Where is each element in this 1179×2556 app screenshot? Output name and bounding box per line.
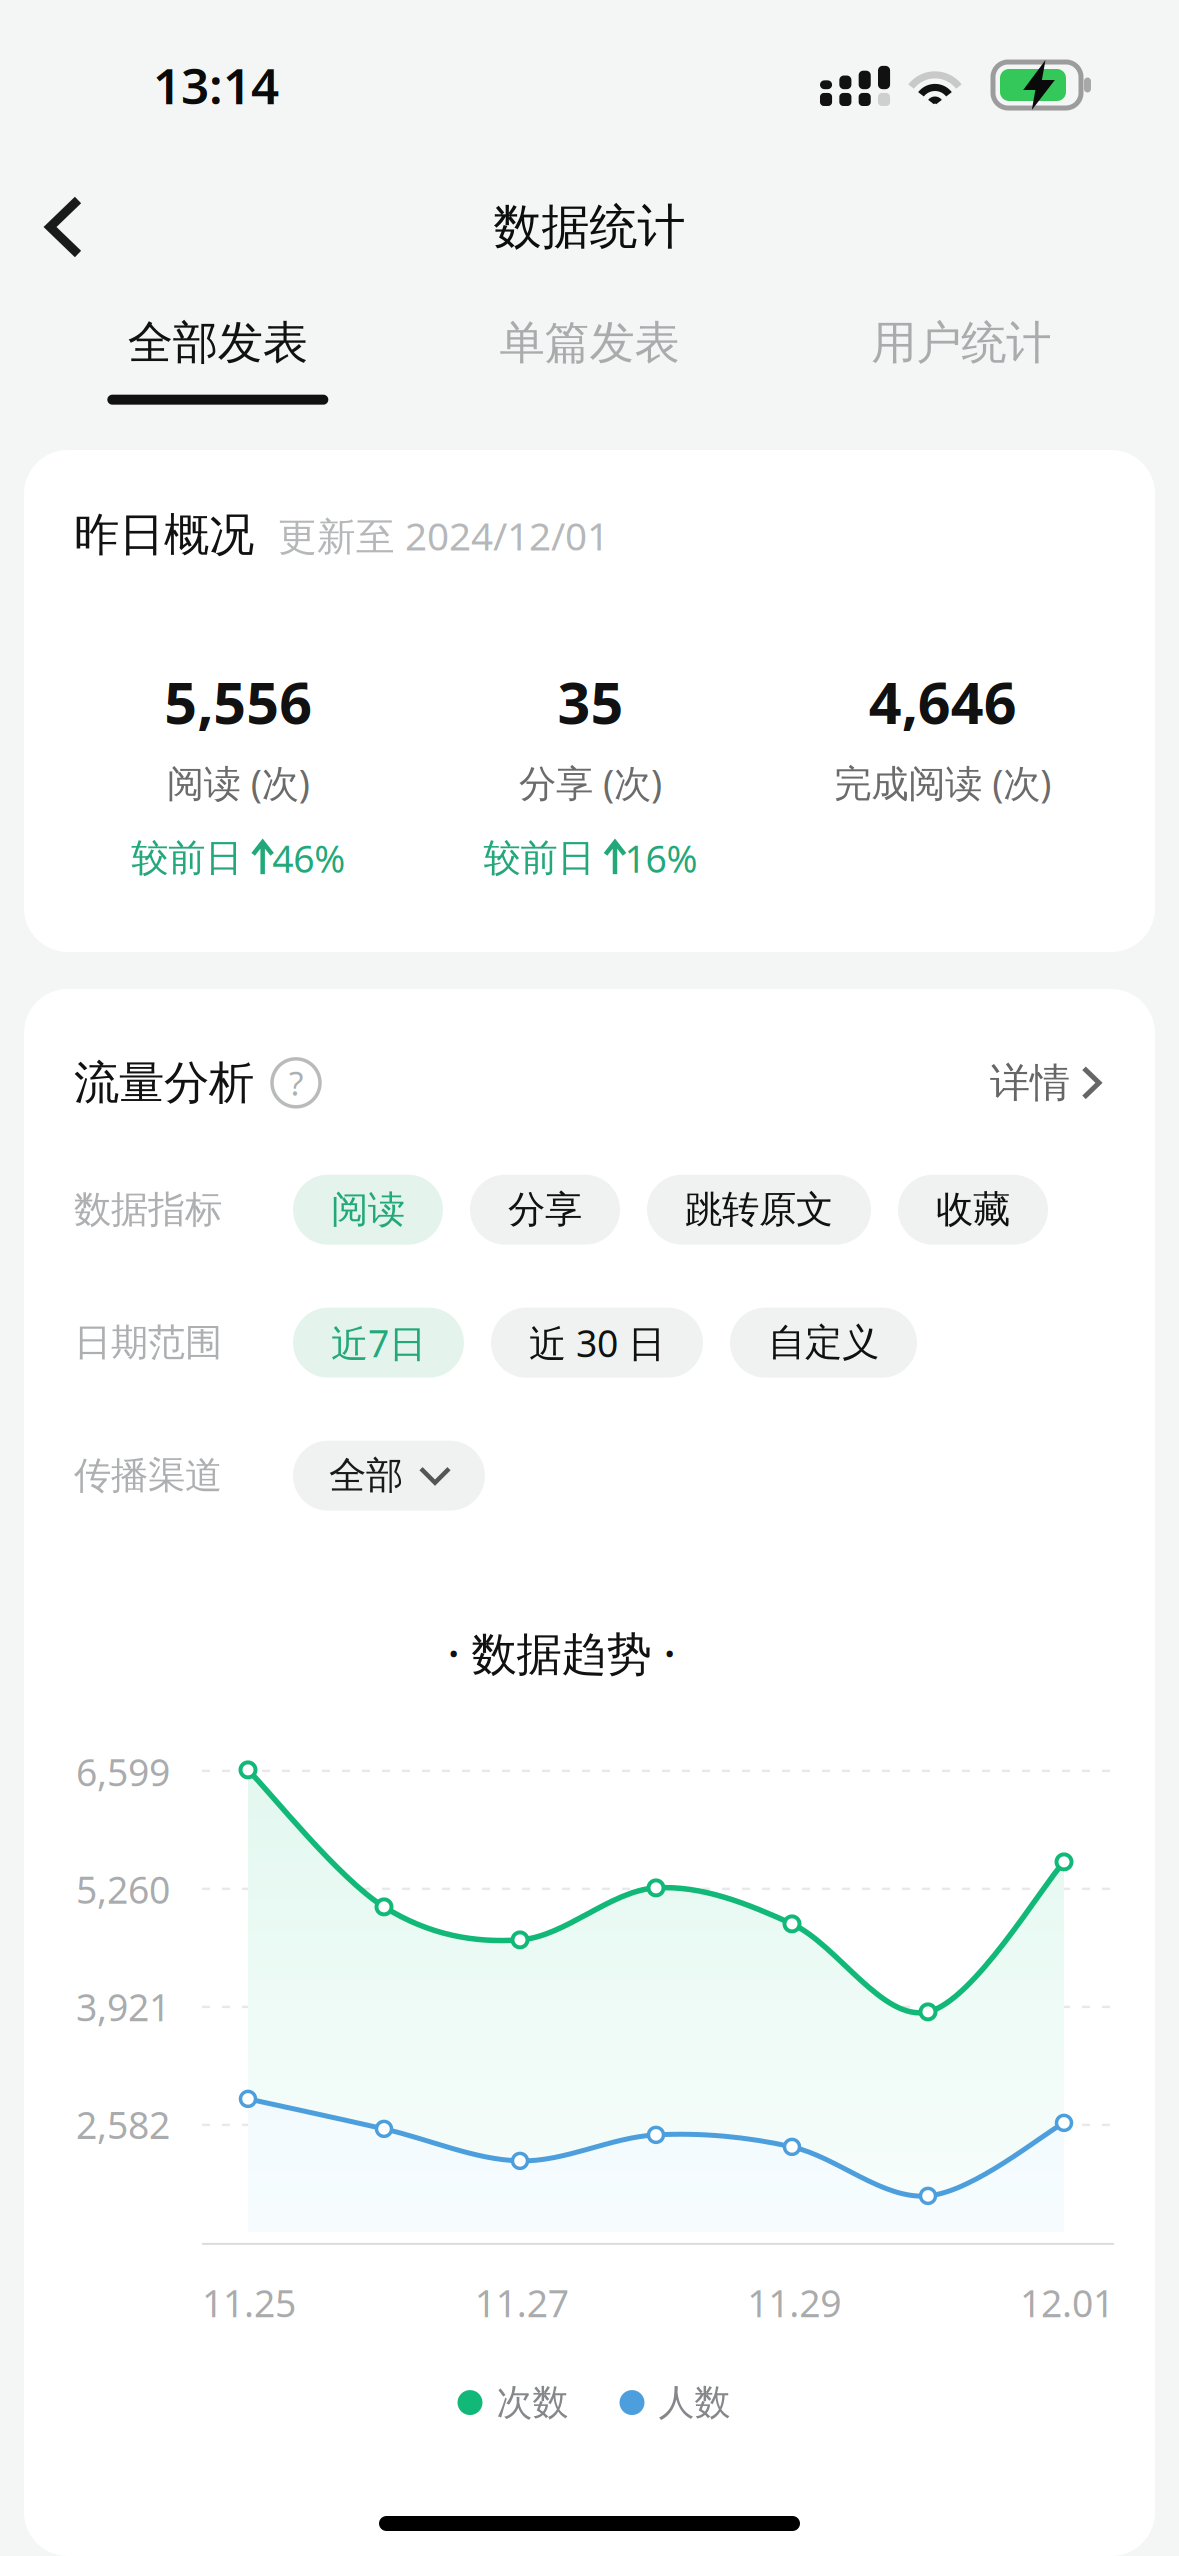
staticText: 传播渠道: [74, 1453, 222, 1499]
staticText: 详情: [990, 1058, 1070, 1107]
staticText: 分享 (次): [519, 758, 662, 807]
button[interactable]: Help: [272, 1059, 320, 1107]
button[interactable]: 自定义: [730, 1308, 917, 1378]
staticText: 完成阅读 (次): [834, 758, 1051, 807]
staticText: 5,260: [76, 1864, 170, 1914]
staticText: 较前日: [483, 835, 605, 881]
staticText: 2,582: [76, 2100, 170, 2149]
staticText: 跳转原文: [685, 1187, 833, 1233]
button[interactable]: 详情: [990, 1058, 1105, 1107]
staticText: 数据指标: [74, 1187, 222, 1233]
staticText: 11.27: [475, 2278, 569, 2327]
staticText: 阅读: [331, 1187, 405, 1233]
staticText: ?: [289, 1061, 303, 1105]
staticText: 阅读 (次): [167, 758, 310, 807]
staticText: 人数: [658, 2380, 730, 2425]
staticText: 日期范围: [74, 1320, 222, 1366]
staticText: 用户统计: [871, 315, 1051, 371]
staticText: 3,921: [76, 1982, 170, 2032]
button[interactable]: 全部发表: [32, 284, 404, 412]
staticText: 自定义: [768, 1320, 879, 1366]
button[interactable]: 近7日: [293, 1308, 464, 1378]
button[interactable]: Back: [0, 168, 118, 286]
button[interactable]: 近 30 日: [491, 1308, 703, 1378]
staticText: 16%: [624, 833, 697, 883]
staticText: 11.25: [202, 2278, 296, 2327]
button[interactable]: 用户统计: [775, 284, 1147, 412]
button[interactable]: 收藏: [898, 1175, 1048, 1245]
staticText: 单篇发表: [499, 315, 679, 371]
staticText: 更新至 2024/12/01: [278, 510, 609, 561]
staticText: 35: [557, 664, 623, 740]
staticText: 近7日: [331, 1318, 426, 1367]
button[interactable]: 全部: [293, 1441, 485, 1511]
button[interactable]: 跳转原文: [647, 1175, 871, 1245]
staticText: 6,599: [76, 1747, 170, 1796]
staticText: 较前日: [131, 835, 253, 881]
button[interactable]: 分享: [470, 1175, 620, 1245]
staticText: 收藏: [936, 1187, 1010, 1233]
button[interactable]: 单篇发表: [404, 284, 775, 412]
staticText: 分享: [508, 1187, 582, 1233]
staticText: 数据统计: [493, 197, 685, 256]
button[interactable]: 阅读: [293, 1175, 443, 1245]
staticText: 4,646: [869, 664, 1017, 740]
staticText: 11.29: [747, 2278, 841, 2327]
staticText: · 数据趋势 ·: [447, 1623, 675, 1683]
staticText: 12.01: [1020, 2278, 1114, 2327]
staticText: 46%: [272, 833, 345, 883]
staticText: 昨日概况: [74, 507, 254, 563]
staticText: 近 30 日: [529, 1318, 665, 1367]
staticText: 全部发表: [128, 315, 308, 371]
staticText: 流量分析: [74, 1055, 254, 1111]
staticText: 次数: [496, 2380, 568, 2425]
staticText: 全部: [329, 1453, 403, 1499]
staticText: 13:14: [153, 52, 279, 118]
staticText: 5,556: [164, 664, 312, 740]
